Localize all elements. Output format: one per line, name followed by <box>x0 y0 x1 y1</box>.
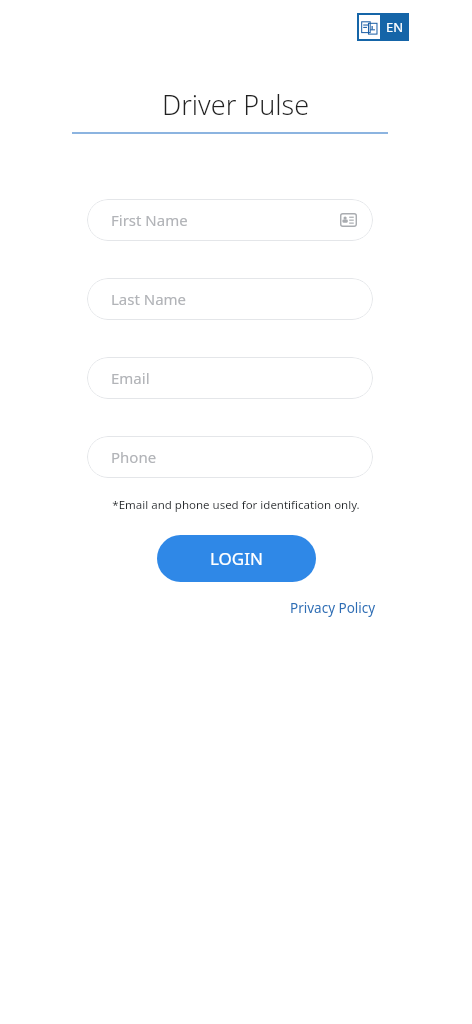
button[interactable]: First Name <box>87 199 373 241</box>
button[interactable]: LOGIN <box>157 535 316 582</box>
staticText: Phone <box>111 447 357 467</box>
staticText: Privacy Policy <box>290 599 376 617</box>
staticText: EN <box>386 18 404 36</box>
staticText: LOGIN <box>210 547 263 570</box>
button[interactable]: Email <box>87 357 373 399</box>
staticText: Last Name <box>111 289 357 309</box>
staticText: *Email and phone used for identification… <box>112 497 360 513</box>
button[interactable]: Phone <box>87 436 373 478</box>
button[interactable]: Privacy Policy <box>288 597 378 619</box>
other: Contacts <box>340 213 357 227</box>
staticText: Driver Pulse <box>162 86 310 123</box>
staticText: Email <box>111 368 357 388</box>
button[interactable]: Change language, English <box>357 13 409 41</box>
staticText: First Name <box>111 210 340 230</box>
button[interactable]: Last Name <box>87 278 373 320</box>
